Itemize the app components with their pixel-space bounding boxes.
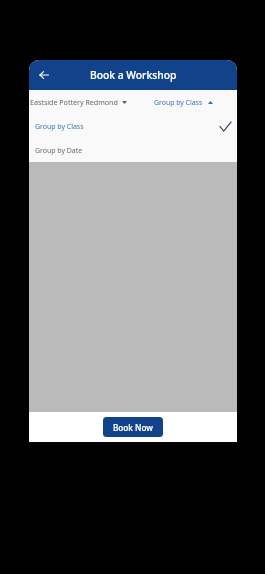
staticText: Book a Workshop xyxy=(90,68,177,82)
staticText: Book Now xyxy=(113,422,153,433)
button[interactable]: Book Now xyxy=(103,417,163,437)
staticText: Eastside Pottery Redmond xyxy=(30,97,118,107)
button[interactable]: Back xyxy=(33,64,55,86)
staticText: Group by Class xyxy=(35,122,84,131)
button[interactable]: Eastside Pottery Redmond xyxy=(29,90,154,114)
staticText: Group by Class xyxy=(154,98,203,107)
button[interactable]: Group by Class xyxy=(29,114,237,138)
button[interactable]: Group by Class xyxy=(154,90,237,114)
staticText: Group by Date xyxy=(35,146,83,155)
button[interactable]: Group by Date xyxy=(29,138,237,162)
